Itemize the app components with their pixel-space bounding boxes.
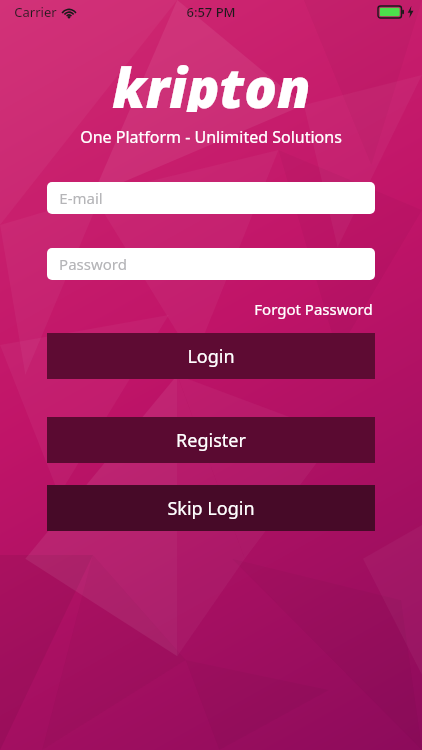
- staticText: Register: [176, 428, 246, 453]
- staticText: Forgot Password: [254, 299, 373, 319]
- staticText: E-mail: [59, 188, 103, 208]
- staticText: Carrier: [14, 3, 57, 21]
- button[interactable]: Forgot Password: [252, 296, 375, 322]
- staticText: 6:57 PM: [186, 3, 236, 21]
- staticText: kripton: [112, 50, 311, 112]
- button[interactable]: E-mail: [47, 182, 375, 214]
- button[interactable]: Register: [47, 417, 375, 463]
- staticText: Skip Login: [167, 496, 255, 521]
- button[interactable]: Login: [47, 333, 375, 379]
- staticText: Password: [59, 254, 127, 274]
- button[interactable]: Skip Login: [47, 485, 375, 531]
- other: Wi-Fi signal: [62, 7, 76, 18]
- staticText: Login: [187, 344, 235, 369]
- other: Battery charging: [378, 6, 404, 18]
- button[interactable]: Password: [47, 248, 375, 280]
- staticText: One Platform - Unlimited Solutions: [80, 126, 342, 148]
